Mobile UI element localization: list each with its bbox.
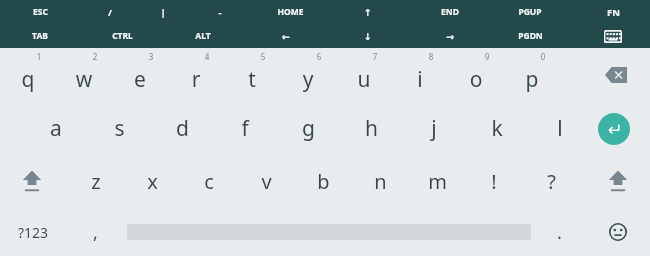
staticText: 9 bbox=[476, 51, 498, 62]
button[interactable]: FN bbox=[583, 0, 643, 24]
button[interactable]: , bbox=[70, 208, 120, 256]
button[interactable]: b bbox=[295, 155, 351, 208]
staticText: i bbox=[392, 65, 448, 94]
button[interactable]: l bbox=[532, 102, 588, 155]
button[interactable]: d bbox=[154, 102, 210, 155]
staticText: 3 bbox=[140, 51, 162, 62]
staticText: h bbox=[365, 114, 378, 143]
staticText: k bbox=[491, 114, 503, 143]
staticText: s bbox=[114, 114, 125, 143]
button[interactable]: 5 bbox=[224, 48, 280, 102]
staticText: g bbox=[302, 114, 315, 143]
button[interactable]: ALT bbox=[173, 24, 233, 48]
button[interactable]: Emoji bbox=[592, 208, 644, 256]
button[interactable]: z bbox=[68, 155, 124, 208]
button[interactable]: PGDN bbox=[500, 24, 560, 48]
staticText: ESC bbox=[33, 6, 48, 18]
button[interactable]: 0 bbox=[504, 48, 560, 102]
button[interactable]: 8 bbox=[392, 48, 448, 102]
staticText: 4 bbox=[196, 51, 218, 62]
staticText: b bbox=[317, 168, 330, 195]
staticText: l bbox=[557, 114, 563, 143]
staticText: ← bbox=[282, 31, 290, 42]
staticText: o bbox=[448, 65, 504, 94]
button[interactable]: → bbox=[420, 24, 480, 48]
staticText: CTRL bbox=[112, 30, 133, 42]
button[interactable]: ↓ bbox=[338, 24, 398, 48]
staticText: y bbox=[280, 65, 336, 94]
button[interactable]: f bbox=[217, 102, 273, 155]
staticText: u bbox=[336, 65, 392, 94]
button[interactable]: m bbox=[409, 155, 465, 208]
staticText: . bbox=[557, 220, 562, 245]
staticText: / bbox=[108, 6, 112, 19]
button[interactable]: TAB bbox=[10, 24, 70, 48]
button[interactable]: x bbox=[124, 155, 180, 208]
button[interactable]: 1 bbox=[0, 48, 56, 102]
button[interactable]: n bbox=[352, 155, 408, 208]
button[interactable]: 2 bbox=[56, 48, 112, 102]
button[interactable]: ! bbox=[466, 155, 522, 208]
staticText: j bbox=[431, 114, 437, 143]
button[interactable]: s bbox=[91, 102, 147, 155]
button[interactable]: v bbox=[238, 155, 294, 208]
staticText: m bbox=[428, 168, 447, 195]
staticText: - bbox=[218, 6, 222, 19]
staticText: c bbox=[204, 168, 214, 195]
button[interactable]: j bbox=[406, 102, 462, 155]
button[interactable]: Shift bbox=[592, 155, 644, 208]
button[interactable]: c bbox=[181, 155, 237, 208]
button[interactable]: HOME bbox=[260, 0, 320, 24]
button[interactable]: ESC bbox=[10, 0, 70, 24]
staticText: a bbox=[50, 114, 62, 143]
staticText: x bbox=[147, 168, 158, 195]
button[interactable]: ↑ bbox=[338, 0, 398, 24]
staticText: n bbox=[374, 168, 387, 195]
button[interactable]: 9 bbox=[448, 48, 504, 102]
staticText: q bbox=[0, 65, 56, 94]
staticText: v bbox=[261, 168, 272, 195]
staticText: d bbox=[176, 114, 189, 143]
staticText: ! bbox=[491, 168, 497, 195]
staticText: ↓ bbox=[364, 31, 372, 42]
button[interactable]: . bbox=[538, 208, 580, 256]
button[interactable]: / bbox=[80, 0, 140, 24]
button[interactable]: Switch keyboard bbox=[583, 24, 643, 48]
button[interactable]: ?123 bbox=[2, 208, 64, 256]
staticText: TAB bbox=[32, 30, 48, 42]
staticText: ↑ bbox=[364, 7, 372, 18]
button[interactable]: h bbox=[343, 102, 399, 155]
button[interactable]: END bbox=[420, 0, 480, 24]
button[interactable]: ← bbox=[256, 24, 316, 48]
button[interactable]: 7 bbox=[336, 48, 392, 102]
staticText: e bbox=[112, 65, 168, 94]
button[interactable]: | bbox=[133, 0, 193, 24]
staticText: 1 bbox=[28, 51, 50, 62]
staticText: 5 bbox=[252, 51, 274, 62]
button[interactable]: CTRL bbox=[92, 24, 152, 48]
button[interactable]: a bbox=[28, 102, 84, 155]
staticText: w bbox=[56, 65, 112, 94]
button[interactable]: 3 bbox=[112, 48, 168, 102]
staticText: | bbox=[160, 6, 166, 19]
button[interactable]: k bbox=[469, 102, 525, 155]
button[interactable]: PGUP bbox=[500, 0, 560, 24]
staticText: z bbox=[91, 168, 101, 195]
staticText: HOME bbox=[277, 6, 304, 18]
staticText: t bbox=[224, 65, 280, 94]
staticText: r bbox=[168, 65, 224, 94]
button[interactable]: 4 bbox=[168, 48, 224, 102]
button[interactable]: ? bbox=[523, 155, 579, 208]
button[interactable]: Enter bbox=[588, 102, 640, 155]
staticText: END bbox=[441, 6, 459, 18]
button[interactable]: g bbox=[280, 102, 336, 155]
button[interactable]: Backspace bbox=[588, 48, 644, 102]
staticText: PGUP bbox=[518, 6, 542, 18]
staticText: 6 bbox=[308, 51, 330, 62]
button[interactable]: Shift bbox=[6, 155, 58, 208]
staticText: p bbox=[504, 65, 560, 94]
staticText: f bbox=[241, 114, 249, 143]
button[interactable]: 6 bbox=[280, 48, 336, 102]
button[interactable]: - bbox=[190, 0, 250, 24]
